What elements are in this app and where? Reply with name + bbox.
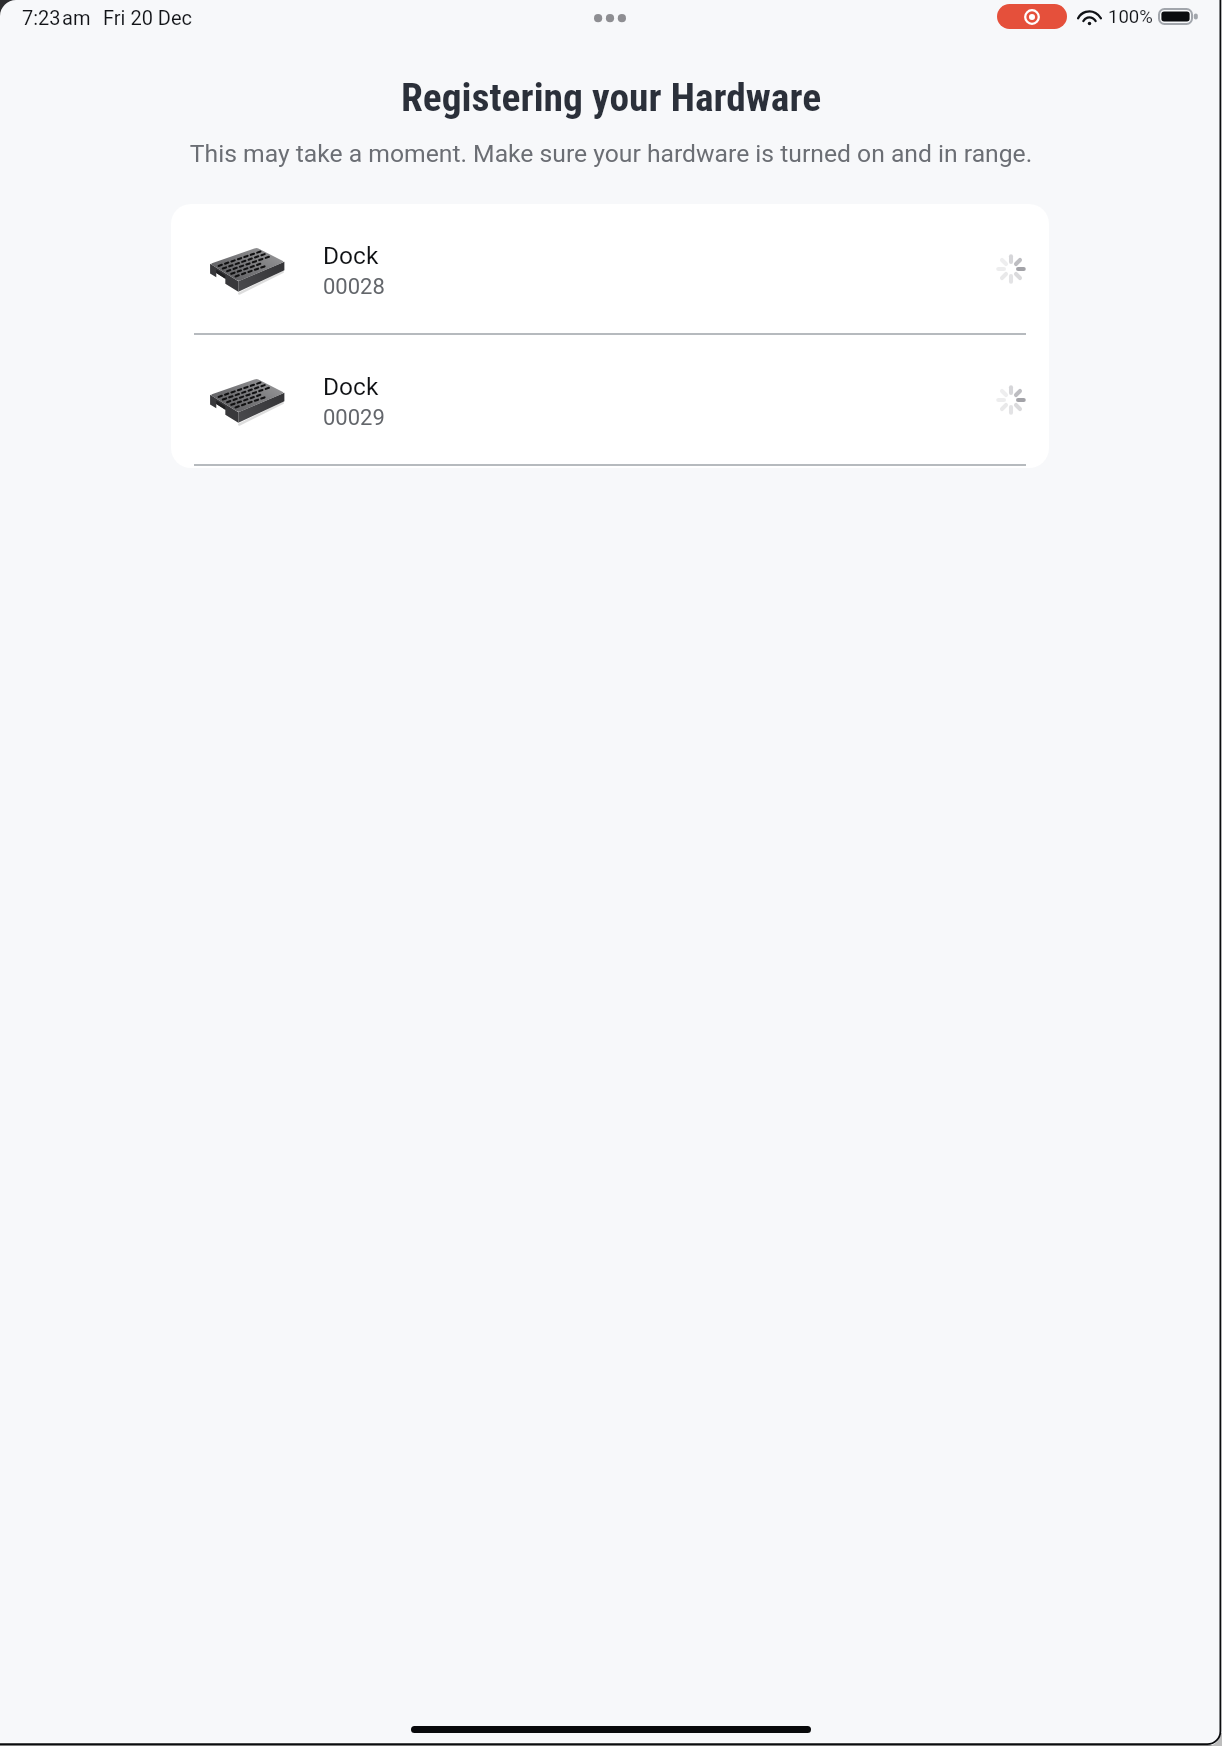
staticText: 7:23 (22, 6, 61, 29)
staticText: 00029 (323, 405, 385, 431)
staticText: Dock (323, 372, 379, 401)
staticText: 00028 (323, 274, 385, 300)
staticText: Fri 20 Dec (103, 6, 193, 29)
other: Loading (996, 385, 1026, 415)
staticText: This may take a moment. Make sure your h… (0, 139, 1222, 168)
button[interactable]: Dock (171, 204, 1049, 335)
staticText: 100% (1108, 6, 1153, 28)
staticText: am (62, 6, 91, 29)
staticText: Dock (323, 241, 379, 270)
other: Screen recording (997, 4, 1067, 29)
staticText: Registering your Hardware (0, 74, 1222, 120)
button[interactable]: Dock (171, 335, 1049, 466)
other: Loading (996, 254, 1026, 284)
